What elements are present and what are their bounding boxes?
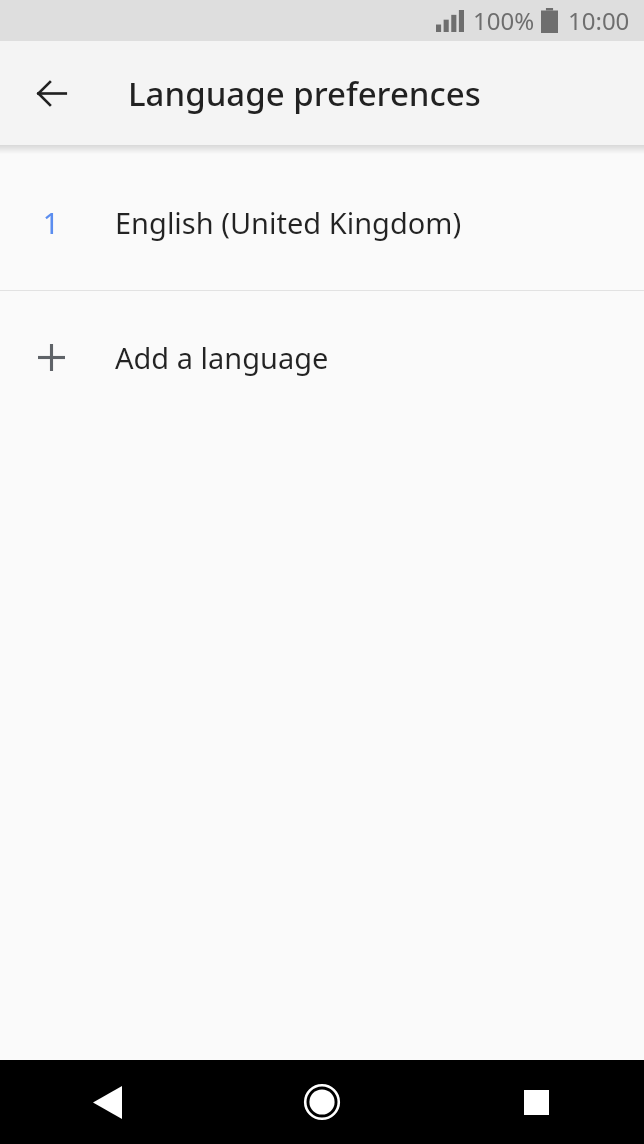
staticText: Add a language (115, 338, 329, 377)
staticText: Language preferences (128, 71, 481, 116)
button[interactable]: Recents (429, 1060, 644, 1144)
button[interactable]: Home (214, 1060, 429, 1144)
button[interactable]: Back (0, 1060, 214, 1144)
staticText: English (United Kingdom) (115, 203, 462, 242)
button[interactable]: Add a language (0, 291, 644, 424)
staticText: 10:00 (568, 4, 630, 37)
staticText: 1 (30, 203, 72, 242)
staticText: 100% (473, 4, 535, 37)
button[interactable]: 1 (0, 154, 644, 290)
button[interactable]: Back (23, 65, 79, 121)
